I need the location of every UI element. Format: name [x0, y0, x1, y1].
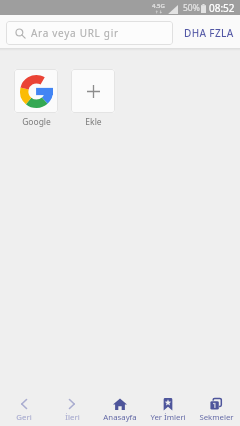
button[interactable]: Ara veya URL gir	[6, 21, 173, 45]
staticText: Ara veya URL gir	[31, 26, 119, 40]
staticText: 50%	[183, 2, 200, 14]
staticText: İleri	[65, 412, 80, 423]
staticText: 4.5G	[152, 2, 165, 10]
staticText: Sekmeler	[199, 412, 234, 423]
button[interactable]: Forward	[48, 390, 96, 426]
button[interactable]: Ekle	[71, 69, 115, 128]
staticText: Ekle	[85, 116, 102, 128]
staticText: Google	[22, 116, 51, 128]
staticText: 08:52	[209, 1, 235, 15]
button[interactable]: Back	[0, 390, 48, 426]
button[interactable]: DHA FZLA	[178, 21, 240, 45]
staticText: DHA FZLA	[184, 26, 234, 40]
staticText: Yer İmleri	[150, 412, 186, 423]
button[interactable]: Google	[14, 69, 58, 128]
staticText: Anasayfa	[103, 412, 137, 423]
button[interactable]: Home	[96, 390, 144, 426]
button[interactable]: Bookmarks	[144, 390, 192, 426]
staticText: Geri	[16, 412, 32, 423]
button[interactable]: Tabs	[192, 390, 240, 426]
